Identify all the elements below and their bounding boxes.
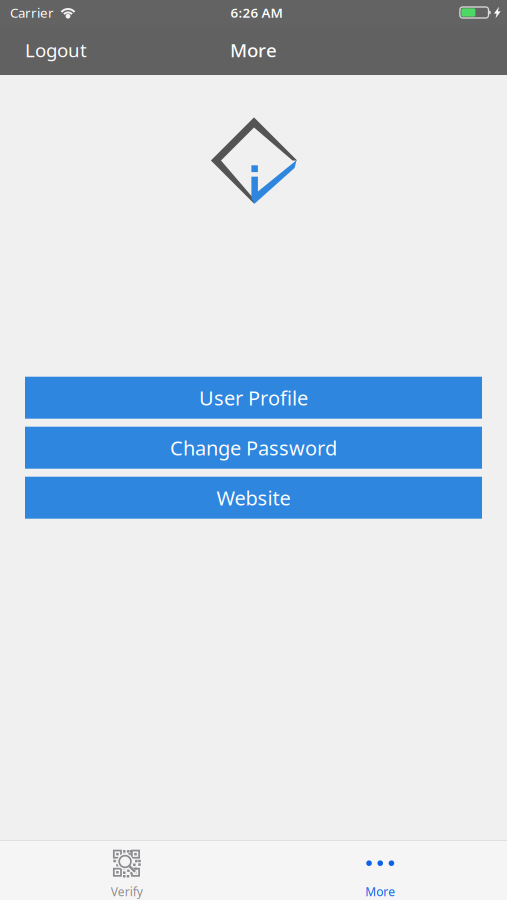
- button[interactable]: Logout: [14, 28, 98, 72]
- staticText: Logout: [25, 38, 87, 62]
- button[interactable]: Website: [25, 477, 482, 519]
- button[interactable]: Verify: [0, 841, 253, 900]
- button[interactable]: User Profile: [25, 377, 482, 419]
- staticText: 6:26 AM: [230, 4, 282, 21]
- staticText: Carrier: [10, 4, 54, 21]
- staticText: User Profile: [199, 384, 308, 411]
- button[interactable]: Change Password: [25, 427, 482, 469]
- staticText: More: [365, 884, 395, 900]
- button[interactable]: More: [253, 841, 507, 900]
- staticText: Verify: [111, 884, 143, 900]
- staticText: Change Password: [170, 434, 337, 461]
- staticText: More: [230, 38, 277, 62]
- staticText: Website: [216, 484, 290, 511]
